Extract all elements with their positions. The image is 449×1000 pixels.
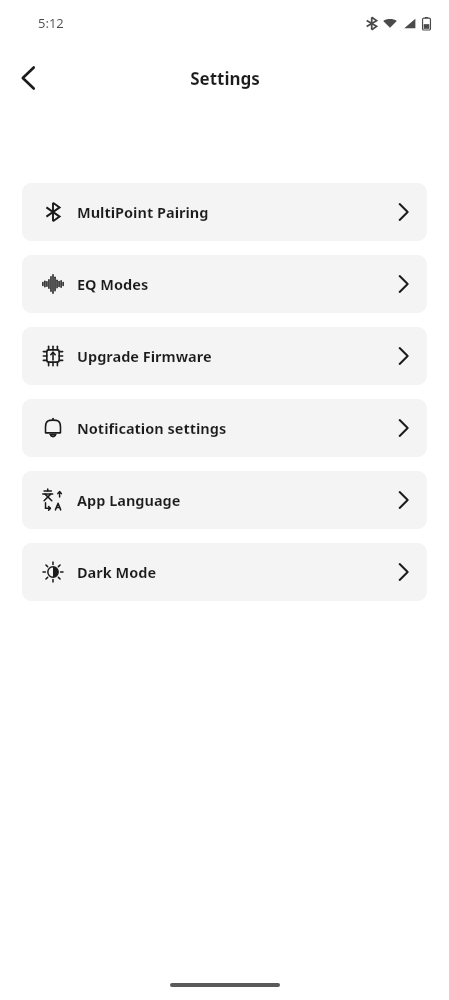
staticText: 5:12 [38, 14, 64, 32]
staticText: EQ Modes [77, 274, 149, 294]
staticText: Notification settings [77, 418, 227, 438]
staticText: Dark Mode [77, 562, 157, 582]
button[interactable]: MultiPoint Pairing [22, 183, 427, 241]
staticText: Settings [190, 67, 260, 90]
staticText: Upgrade Firmware [77, 346, 212, 366]
staticText: App Language [77, 490, 181, 510]
button[interactable]: Notification settings [22, 399, 427, 457]
button[interactable]: EQ Modes [22, 255, 427, 313]
button[interactable]: Upgrade Firmware [22, 327, 427, 385]
button[interactable]: App Language [22, 471, 427, 529]
button[interactable]: Back [6, 56, 50, 100]
staticText: MultiPoint Pairing [77, 202, 209, 222]
button[interactable]: Dark Mode [22, 543, 427, 601]
